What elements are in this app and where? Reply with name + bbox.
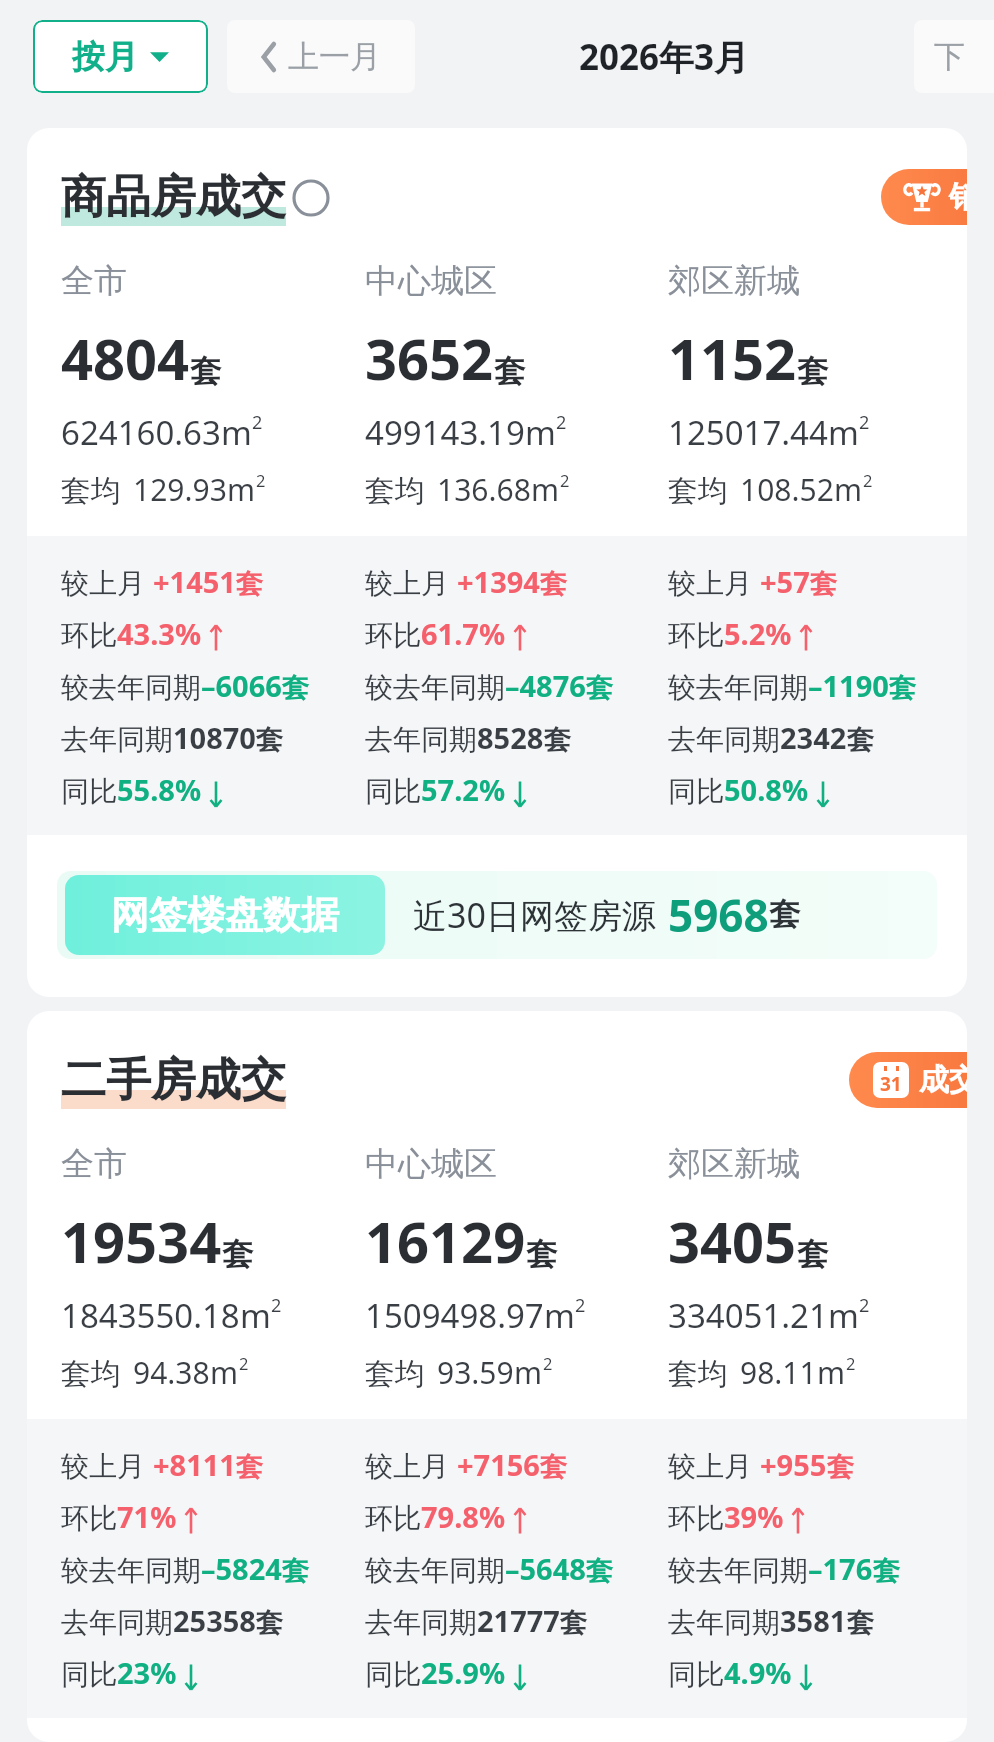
staticText: 按月 (72, 36, 138, 78)
staticText: 套 (282, 1554, 309, 1588)
staticText: 套 (540, 567, 567, 601)
staticText: 环比 (365, 618, 421, 653)
staticText: 2 (575, 1293, 586, 1318)
staticText: 套 (236, 1450, 263, 1484)
staticText: 下 (934, 37, 965, 76)
staticText: 25358 (173, 1601, 256, 1640)
staticText: 近30日网签房源 (413, 892, 656, 938)
staticText: 93.59 (437, 1352, 514, 1393)
staticText: 全市 (61, 260, 127, 302)
staticText: 较上月 (61, 563, 153, 601)
staticText: 郊区新城 (668, 260, 800, 302)
staticText: 25.9% (421, 1653, 506, 1692)
staticText: 同比 (668, 1657, 724, 1692)
staticText: 5.2% (724, 614, 792, 653)
staticText: m (525, 410, 556, 455)
staticText: 套 (282, 671, 309, 705)
staticText: 套 (560, 1606, 587, 1640)
staticText: 3581 (780, 1601, 847, 1640)
staticText: 2342 (780, 718, 847, 757)
button[interactable]: 网签楼盘数据 (57, 871, 937, 959)
staticText: 套均 (61, 1355, 121, 1393)
staticText: 中心城区 (365, 1143, 497, 1185)
staticText: 较上月 (668, 1446, 760, 1484)
staticText: 环比 (61, 1501, 117, 1536)
staticText: 23% (117, 1653, 177, 1692)
staticText: 上一月 (288, 37, 381, 76)
staticText: 57.2% (421, 770, 506, 809)
staticText: 套均 (668, 1355, 728, 1393)
staticText: 同比 (668, 774, 724, 809)
staticText: 2 (543, 1352, 553, 1374)
staticText: +7156 (457, 1445, 540, 1484)
staticText: 10870 (173, 718, 256, 757)
staticText: 3405 (668, 1203, 797, 1279)
staticText: m (227, 469, 256, 510)
staticText: 套 (256, 1606, 283, 1640)
staticText: 2 (252, 410, 263, 435)
staticText: 网签楼盘数据 (111, 891, 339, 939)
staticText: 套 (827, 1450, 854, 1484)
button[interactable]: 31 (849, 1052, 967, 1108)
staticText: 去年同期 (365, 722, 477, 757)
staticText: 同比 (61, 1657, 117, 1692)
staticText: 8528 (477, 718, 544, 757)
button[interactable]: 二手房成交 (61, 1052, 286, 1109)
staticText: 2 (271, 1293, 282, 1318)
staticText: 套 (586, 1554, 613, 1588)
staticText: 50.8% (724, 770, 809, 809)
staticText: 套 (494, 352, 525, 391)
staticText: 499143.19 (365, 410, 525, 455)
staticText: m (221, 410, 252, 455)
button[interactable]: 下 (914, 20, 994, 93)
staticText: 2 (556, 410, 567, 435)
staticText: 去年同期 (61, 722, 173, 757)
staticText: +955 (760, 1445, 827, 1484)
button[interactable]: 按月 (33, 20, 208, 93)
staticText: +57 (760, 562, 810, 601)
staticText: 较去年同期 (61, 1553, 201, 1588)
staticText: 2 (846, 1352, 856, 1374)
staticText: 套均 (365, 1355, 425, 1393)
staticText: 二手房成交 (61, 1052, 286, 1109)
staticText: 16129 (365, 1203, 526, 1279)
staticText: 43.3% (117, 614, 202, 653)
staticText: 4804 (61, 320, 190, 396)
staticText: –5648 (505, 1549, 586, 1588)
staticText: 较去年同期 (61, 670, 201, 705)
other: 帮助说明 (292, 179, 330, 217)
button[interactable]: 商品房成交 (61, 169, 330, 226)
staticText: 成交 (919, 1061, 967, 1099)
staticText: 去年同期 (61, 1605, 173, 1640)
staticText: 去年同期 (365, 1605, 477, 1640)
staticText: 去年同期 (668, 1605, 780, 1640)
staticText: 环比 (668, 618, 724, 653)
staticText: 624160.63 (61, 410, 221, 455)
staticText: 5968 (668, 885, 769, 945)
staticText: +8111 (153, 1445, 236, 1484)
staticText: –6066 (201, 666, 282, 705)
staticText: 郊区新城 (668, 1143, 800, 1185)
staticText: m (828, 1293, 859, 1338)
staticText: 较去年同期 (668, 670, 808, 705)
staticText: 套 (544, 723, 571, 757)
staticText: –1190 (808, 666, 889, 705)
staticText: 71% (117, 1497, 177, 1536)
staticText: 98.11 (740, 1352, 817, 1393)
staticText: 套 (810, 567, 837, 601)
staticText: 同比 (365, 774, 421, 809)
staticText: 套 (190, 352, 221, 391)
staticText: 1509498.97 (365, 1293, 544, 1338)
staticText: 环比 (668, 1501, 724, 1536)
staticText: 129.93 (133, 469, 227, 510)
staticText: 61.7% (421, 614, 506, 653)
staticText: 套 (889, 671, 916, 705)
button[interactable]: 销 (881, 169, 967, 225)
staticText: 去年同期 (668, 722, 780, 757)
staticText: 2 (560, 469, 570, 491)
button[interactable]: 上一月 (227, 20, 415, 93)
staticText: 销 (949, 178, 967, 216)
staticText: 中心城区 (365, 260, 497, 302)
staticText: –4876 (505, 666, 586, 705)
staticText: 套均 (365, 472, 425, 510)
